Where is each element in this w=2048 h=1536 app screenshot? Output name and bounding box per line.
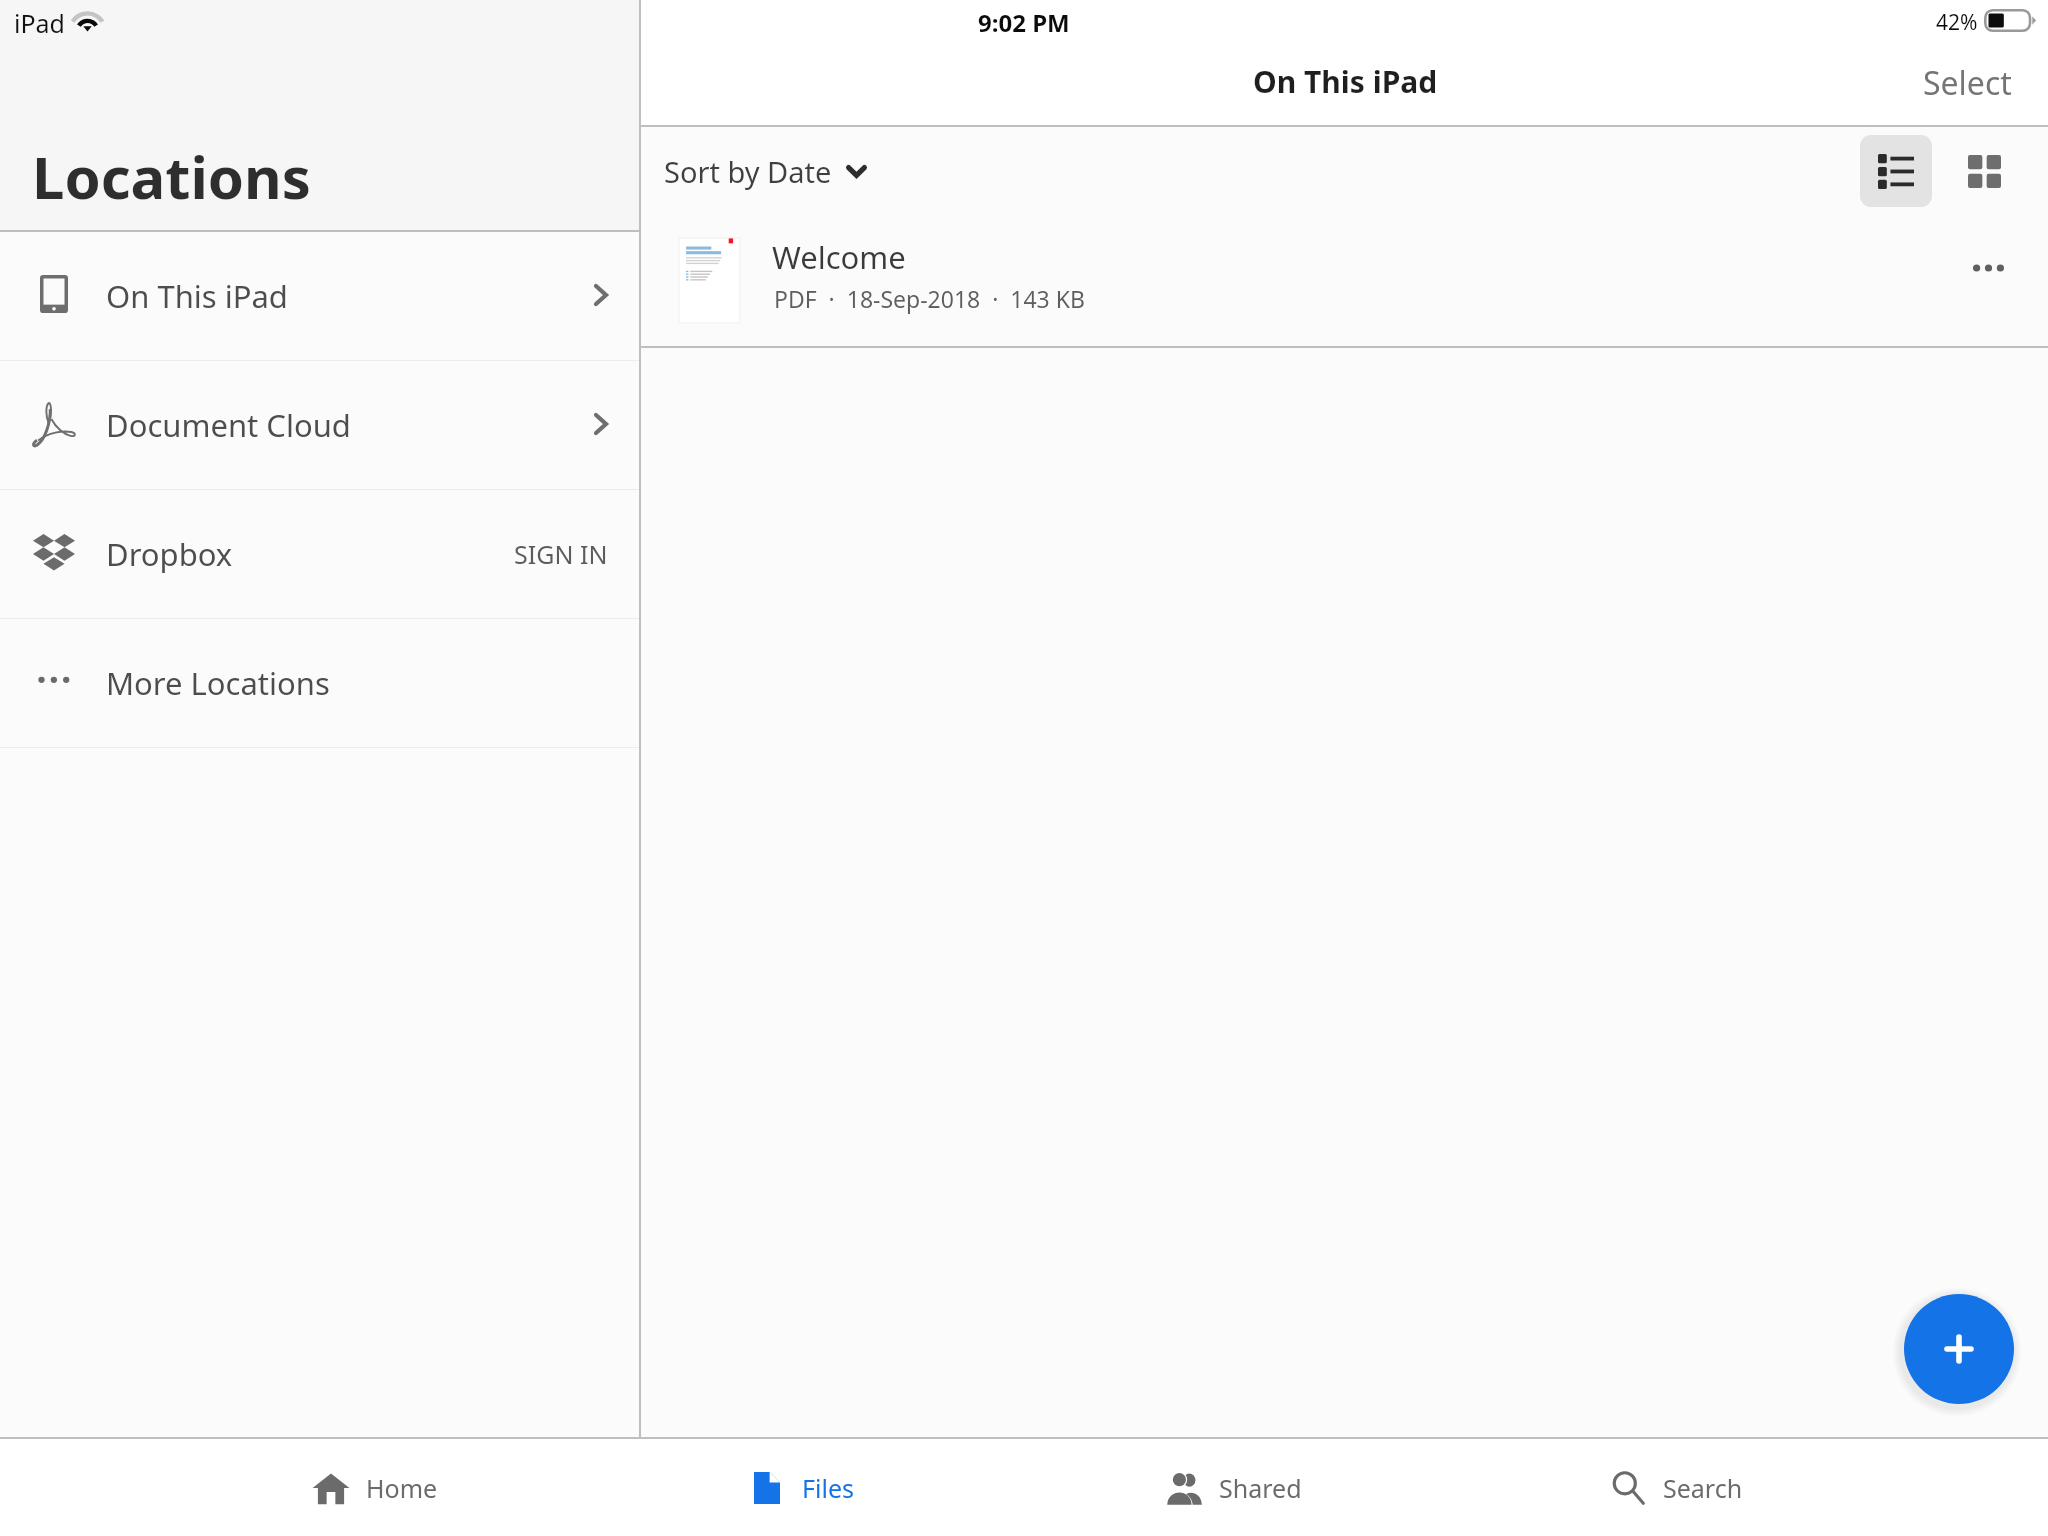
- button[interactable]: Sort by Date: [652, 140, 879, 203]
- staticText: Welcome: [772, 236, 906, 278]
- staticText: Locations: [32, 137, 311, 216]
- staticText: iPad: [14, 6, 65, 40]
- button[interactable]: Dropbox: [0, 490, 639, 618]
- button[interactable]: More Locations: [0, 619, 639, 747]
- button[interactable]: Document Cloud: [0, 361, 639, 489]
- staticText: PDF · 18-Sep-2018 · 143 KB: [774, 283, 1085, 314]
- staticText: Sort by Date: [664, 152, 832, 191]
- staticText: Dropbox: [106, 533, 233, 575]
- staticText: 42%: [1936, 8, 1978, 37]
- staticText: On This iPad: [106, 275, 288, 317]
- staticText: 9:02 PM: [978, 6, 1070, 39]
- button[interactable]: More options: [1948, 228, 2028, 308]
- staticText: Document Cloud: [106, 404, 351, 446]
- button[interactable]: Search: [1588, 1439, 1765, 1536]
- button[interactable]: Home: [290, 1439, 460, 1536]
- button[interactable]: Welcome: [641, 215, 2048, 346]
- staticText: Select: [1923, 61, 2012, 105]
- button[interactable]: List view: [1860, 135, 1932, 207]
- button[interactable]: On This iPad: [0, 232, 639, 360]
- button[interactable]: Create new file: [1904, 1294, 2014, 1404]
- button[interactable]: Files: [732, 1439, 876, 1536]
- button[interactable]: Shared: [1143, 1439, 1324, 1536]
- button[interactable]: Grid view: [1949, 136, 2019, 206]
- staticText: Shared: [1219, 1471, 1302, 1505]
- staticText: On This iPad: [1253, 61, 1438, 102]
- staticText: SIGN IN: [514, 537, 608, 571]
- button[interactable]: Select: [1887, 49, 2048, 117]
- staticText: More Locations: [106, 662, 330, 704]
- staticText: Files: [802, 1471, 854, 1505]
- staticText: Home: [366, 1471, 438, 1505]
- staticText: Search: [1663, 1471, 1743, 1505]
